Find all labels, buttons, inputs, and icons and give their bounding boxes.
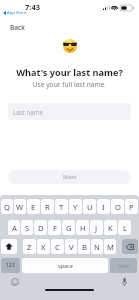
staticText: Next xyxy=(63,173,77,181)
button[interactable]: Next xyxy=(8,170,131,184)
staticText: next xyxy=(118,262,130,269)
button[interactable]: U xyxy=(83,199,96,214)
staticText: E xyxy=(31,202,36,212)
staticText: Q xyxy=(4,202,10,212)
staticText: What's your last name? xyxy=(0,66,139,79)
button[interactable]: Dictation xyxy=(119,277,129,287)
staticText: Z xyxy=(27,242,32,252)
button[interactable]: F xyxy=(48,220,61,235)
button[interactable]: X xyxy=(37,239,50,254)
button[interactable]: 123 xyxy=(1,258,20,273)
staticText: V xyxy=(69,242,74,252)
staticText: 7:43 xyxy=(25,2,40,12)
button[interactable]: E xyxy=(27,199,40,214)
staticText: Y xyxy=(73,202,78,212)
button[interactable]: space xyxy=(22,258,108,273)
staticText: J xyxy=(95,223,98,233)
button[interactable]: O xyxy=(111,199,124,214)
staticText: U xyxy=(87,202,93,212)
button[interactable]: D xyxy=(34,220,47,235)
button[interactable]: K xyxy=(104,220,117,235)
staticText: T xyxy=(59,202,64,212)
button[interactable]: T xyxy=(55,199,68,214)
staticText: S xyxy=(25,223,30,233)
staticText: B xyxy=(82,242,87,252)
staticText: App Store xyxy=(7,10,27,16)
staticText: G xyxy=(66,223,72,233)
button[interactable]: J xyxy=(90,220,103,235)
button[interactable]: Shift xyxy=(1,239,17,254)
staticText: Last name xyxy=(13,108,44,116)
staticText: R xyxy=(45,202,50,212)
staticText: Back xyxy=(10,23,25,32)
button[interactable]: N xyxy=(91,239,103,254)
staticText: X xyxy=(41,242,46,252)
button[interactable]: next xyxy=(110,258,137,273)
button[interactable]: I xyxy=(97,199,110,214)
button[interactable]: P xyxy=(125,199,138,214)
button[interactable]: C xyxy=(51,239,64,254)
button[interactable]: A xyxy=(8,220,20,235)
button[interactable]: S xyxy=(21,220,33,235)
button[interactable]: W xyxy=(14,199,26,214)
staticText: L xyxy=(123,223,127,233)
button[interactable]: Z xyxy=(23,239,36,254)
staticText: space xyxy=(58,262,73,269)
staticText: F xyxy=(53,223,57,233)
staticText: N xyxy=(94,242,100,252)
staticText: P xyxy=(129,202,134,212)
button[interactable]: Last name xyxy=(8,103,131,120)
staticText: I xyxy=(102,202,105,212)
button[interactable]: B xyxy=(78,239,90,254)
button[interactable]: L xyxy=(118,220,131,235)
button[interactable]: Q xyxy=(1,199,13,214)
staticText: A xyxy=(12,223,17,233)
button[interactable]: M xyxy=(104,239,116,254)
button[interactable]: Backspace xyxy=(122,239,138,254)
staticText: 123 xyxy=(6,262,15,269)
staticText: Use your full last name. xyxy=(0,80,139,89)
button[interactable]: Back xyxy=(10,23,25,32)
staticText: M xyxy=(107,242,114,252)
staticText: W xyxy=(16,202,24,212)
staticText: C xyxy=(55,242,60,252)
button[interactable]: V xyxy=(65,239,77,254)
staticText: D xyxy=(38,223,44,233)
staticText: H xyxy=(80,223,86,233)
staticText: K xyxy=(108,223,113,233)
button[interactable]: R xyxy=(41,199,54,214)
button[interactable]: H xyxy=(76,220,89,235)
button[interactable]: G xyxy=(62,220,75,235)
button[interactable]: Emoji keyboard xyxy=(10,277,20,287)
staticText: O xyxy=(115,202,121,212)
button[interactable]: Y xyxy=(69,199,82,214)
